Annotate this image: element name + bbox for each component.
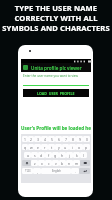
staticText: g	[54, 153, 57, 158]
staticText: 6	[58, 137, 60, 142]
button[interactable]: l	[80, 152, 87, 158]
staticText: w	[30, 145, 33, 150]
button[interactable]: t	[48, 144, 55, 150]
button[interactable]: u	[62, 144, 69, 150]
staticText: n	[68, 161, 71, 166]
button[interactable]: Enter	[79, 168, 90, 174]
button[interactable]: o	[76, 144, 83, 150]
staticText: 4	[44, 137, 46, 142]
staticText: 3	[37, 137, 39, 142]
button[interactable]: c	[45, 160, 52, 166]
button[interactable]: 9	[76, 136, 83, 142]
staticText: 2	[30, 137, 32, 142]
staticText: User's Profile will be loaded here	[21, 125, 91, 131]
staticText: a	[27, 153, 29, 158]
staticText: English	[52, 169, 61, 173]
staticText: o	[78, 145, 81, 150]
button[interactable]: h	[59, 152, 66, 158]
button[interactable]: e	[34, 144, 41, 150]
staticText: LOAD USER PROFILE	[37, 91, 75, 96]
button[interactable]: f	[45, 152, 52, 158]
button[interactable]: y	[55, 144, 62, 150]
staticText: 9	[79, 137, 81, 142]
staticText: 7	[65, 137, 67, 142]
staticText: s	[34, 153, 36, 158]
button[interactable]: j	[66, 152, 73, 158]
button[interactable]: v	[52, 160, 59, 166]
button[interactable]: 1	[22, 136, 28, 142]
staticText: l	[83, 153, 84, 158]
staticText: 0	[86, 137, 88, 142]
staticText: j	[69, 153, 70, 158]
button[interactable]: k	[73, 152, 80, 158]
button[interactable]: i	[69, 144, 76, 150]
button[interactable]: Backspace	[80, 160, 90, 166]
staticText: z	[34, 161, 36, 166]
button[interactable]: m	[73, 160, 80, 166]
button[interactable]: z	[31, 160, 38, 166]
button[interactable]: 2	[28, 136, 34, 142]
button[interactable]: n	[66, 160, 73, 166]
staticText: m	[75, 161, 79, 166]
button[interactable]: 0	[83, 136, 90, 142]
staticText: .	[75, 169, 76, 174]
staticText: y	[58, 145, 60, 150]
button[interactable]: 7	[62, 136, 69, 142]
staticText: e	[37, 145, 39, 150]
other: App icon	[23, 65, 28, 70]
button[interactable]: s	[31, 152, 38, 158]
staticText: ,	[37, 169, 38, 174]
button[interactable]: App icon	[21, 63, 91, 72]
button[interactable]: ,	[33, 168, 41, 174]
button[interactable]: LOAD USER PROFILE	[23, 89, 89, 97]
staticText: c	[48, 161, 50, 166]
staticText: q	[24, 145, 27, 150]
button[interactable]: 8	[69, 136, 76, 142]
staticText: Enter the user name you want to view	[23, 74, 78, 78]
staticText: f	[48, 153, 50, 158]
button[interactable]: x	[38, 160, 45, 166]
button[interactable]: .	[71, 168, 79, 174]
button[interactable]: 6	[55, 136, 62, 142]
button[interactable]: w	[28, 144, 34, 150]
staticText: u	[64, 145, 67, 150]
button[interactable]: 5	[48, 136, 55, 142]
staticText: i	[72, 145, 73, 150]
staticText: x	[41, 161, 43, 166]
button[interactable]: b	[59, 160, 66, 166]
staticText: Unita profile plc viewer	[31, 65, 82, 71]
staticText: 1	[24, 137, 26, 142]
staticText: v	[55, 161, 57, 166]
staticText: TYPE THE USER NAME CORRECTLY WITH ALL SY…	[0, 3, 112, 33]
button[interactable]: Shift	[22, 160, 31, 166]
button[interactable]: d	[38, 152, 45, 158]
staticText: d	[40, 153, 43, 158]
staticText: t	[51, 145, 53, 150]
staticText: r	[44, 145, 46, 150]
staticText: k	[76, 153, 78, 158]
button[interactable]: 3	[34, 136, 41, 142]
staticText: 8	[72, 137, 74, 142]
staticText: b	[61, 161, 64, 166]
staticText: ?123	[25, 169, 31, 173]
staticText: p	[85, 145, 88, 150]
staticText: 5	[51, 137, 53, 142]
button[interactable]: ?123	[22, 168, 33, 174]
button[interactable]: 4	[41, 136, 48, 142]
button[interactable]: g	[52, 152, 59, 158]
button[interactable]: q	[22, 144, 28, 150]
button[interactable]: English	[41, 168, 71, 174]
button[interactable]: r	[41, 144, 48, 150]
staticText: h	[61, 153, 64, 158]
button[interactable]: a	[24, 152, 31, 158]
button[interactable]: p	[83, 144, 90, 150]
